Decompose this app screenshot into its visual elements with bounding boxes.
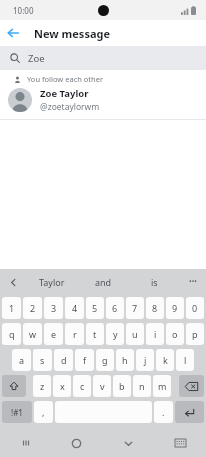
- button[interactable]: l: [176, 349, 194, 371]
- button[interactable]: and: [78, 269, 129, 295]
- button[interactable]: b: [113, 375, 131, 397]
- button[interactable]: Zoe: [0, 46, 206, 70]
- button[interactable]: Backspace: [179, 375, 204, 397]
- button[interactable]: t: [86, 323, 104, 345]
- staticText: Zoe: [28, 52, 45, 65]
- button[interactable]: 4: [65, 297, 84, 319]
- button[interactable]: e: [44, 323, 63, 345]
- button[interactable]: 5: [86, 297, 104, 319]
- button[interactable]: 1: [2, 297, 21, 319]
- staticText: 5: [92, 302, 98, 314]
- staticText: j: [144, 354, 147, 366]
- staticText: Taylor: [39, 276, 65, 288]
- button[interactable]: a: [12, 349, 31, 371]
- staticText: is: [151, 276, 158, 288]
- button[interactable]: i: [146, 323, 164, 345]
- staticText: You follow each other: [27, 74, 104, 84]
- button[interactable]: is: [129, 269, 180, 295]
- staticText: @zoetaylorwm: [40, 101, 100, 113]
- staticText: o: [172, 328, 178, 340]
- staticText: f: [83, 354, 87, 366]
- button[interactable]: .: [154, 401, 173, 423]
- button[interactable]: v: [93, 375, 111, 397]
- button[interactable]: m: [153, 375, 171, 397]
- staticText: v: [100, 380, 105, 392]
- staticText: .: [162, 406, 165, 418]
- staticText: g: [102, 354, 108, 366]
- button[interactable]: p: [186, 323, 204, 345]
- staticText: q: [9, 328, 15, 340]
- button[interactable]: 0: [186, 297, 204, 319]
- staticText: 9: [172, 302, 178, 314]
- button[interactable]: h: [116, 349, 134, 371]
- button[interactable]: Shift: [2, 375, 26, 397]
- button[interactable]: More suggestions: [180, 269, 206, 295]
- staticText: w: [29, 328, 37, 340]
- staticText: y: [113, 328, 118, 340]
- staticText: 1: [9, 302, 15, 314]
- staticText: 6: [112, 302, 118, 314]
- button[interactable]: r: [65, 323, 84, 345]
- staticText: u: [132, 328, 138, 340]
- staticText: •••: [189, 277, 197, 287]
- staticText: a: [19, 354, 25, 366]
- button[interactable]: 6: [106, 297, 124, 319]
- button[interactable]: j: [136, 349, 154, 371]
- button[interactable]: k: [156, 349, 174, 371]
- staticText: s: [40, 354, 45, 366]
- button[interactable]: z: [33, 375, 51, 397]
- staticText: i: [154, 328, 157, 340]
- button[interactable]: x: [53, 375, 71, 397]
- staticText: l: [184, 354, 187, 366]
- staticText: 3: [51, 302, 57, 314]
- staticText: 8: [152, 302, 158, 314]
- button[interactable]: Back: [102, 429, 154, 457]
- button[interactable]: 9: [166, 297, 184, 319]
- staticText: and: [95, 276, 112, 288]
- button[interactable]: 2: [23, 297, 42, 319]
- staticText: 10:00: [13, 5, 34, 16]
- staticText: p: [192, 328, 198, 340]
- staticText: d: [61, 354, 67, 366]
- button[interactable]: d: [54, 349, 73, 371]
- button[interactable]: o: [166, 323, 184, 345]
- staticText: ,: [42, 406, 45, 418]
- staticText: t: [93, 328, 97, 340]
- staticText: k: [163, 354, 168, 366]
- button[interactable]: Recents: [0, 429, 51, 457]
- button[interactable]: n: [133, 375, 151, 397]
- button[interactable]: ,: [34, 401, 53, 423]
- staticText: Zoe Taylor: [40, 87, 89, 100]
- staticText: h: [122, 354, 128, 366]
- button[interactable]: w: [23, 323, 42, 345]
- button[interactable]: Home: [51, 429, 102, 457]
- button[interactable]: u: [126, 323, 144, 345]
- button[interactable]: Hide keyboard: [154, 429, 206, 457]
- button[interactable]: y: [106, 323, 124, 345]
- staticText: n: [139, 380, 145, 392]
- button[interactable]: Enter: [175, 401, 204, 423]
- staticText: c: [80, 380, 85, 392]
- button[interactable]: !#1: [2, 401, 32, 423]
- button[interactable]: Back: [0, 20, 26, 46]
- button[interactable]: g: [96, 349, 114, 371]
- staticText: 2: [30, 302, 36, 314]
- staticText: b: [119, 380, 125, 392]
- button[interactable]: q: [2, 323, 21, 345]
- button[interactable]: 7: [126, 297, 144, 319]
- button[interactable]: Taylor: [26, 269, 78, 295]
- staticText: 7: [132, 302, 138, 314]
- staticText: New message: [34, 26, 111, 41]
- button[interactable]: 8: [146, 297, 164, 319]
- button[interactable]: You follow each other: [0, 70, 206, 120]
- staticText: 4: [72, 302, 78, 314]
- button[interactable]: c: [73, 375, 91, 397]
- button[interactable]: f: [75, 349, 94, 371]
- button[interactable]: 3: [44, 297, 63, 319]
- button[interactable]: s: [33, 349, 52, 371]
- staticText: z: [40, 380, 45, 392]
- button[interactable]: Previous suggestions: [0, 269, 26, 295]
- staticText: 0: [192, 302, 198, 314]
- staticText: m: [158, 380, 167, 392]
